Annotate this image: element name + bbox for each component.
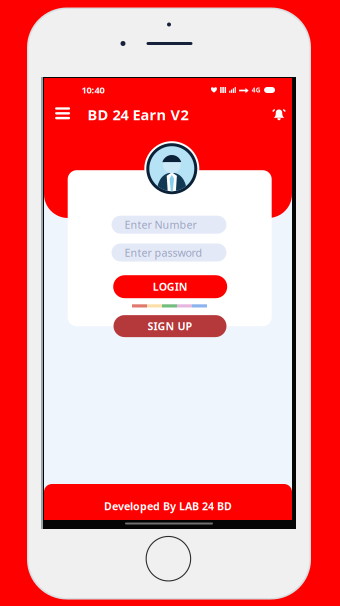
button[interactable]: Enter password [111,243,226,261]
staticText: LOGIN [153,280,188,294]
staticText: 4G [252,86,261,94]
staticText: SIGN UP [147,319,192,333]
staticText: BD 24 Earn V2 [87,105,188,124]
button[interactable]: Developed By LAB 24 BD [44,484,292,528]
button[interactable]: Notifications [268,104,290,125]
staticText: Enter password [124,245,202,260]
staticText: Developed By LAB 24 BD [104,499,232,513]
staticText: Enter Number [124,218,196,232]
button[interactable]: Enter Number [111,216,226,234]
button[interactable]: LOGIN [113,275,227,298]
button[interactable]: SIGN UP [113,315,226,337]
button[interactable]: Open menu [50,102,75,124]
staticText: 10:40 [81,84,104,96]
